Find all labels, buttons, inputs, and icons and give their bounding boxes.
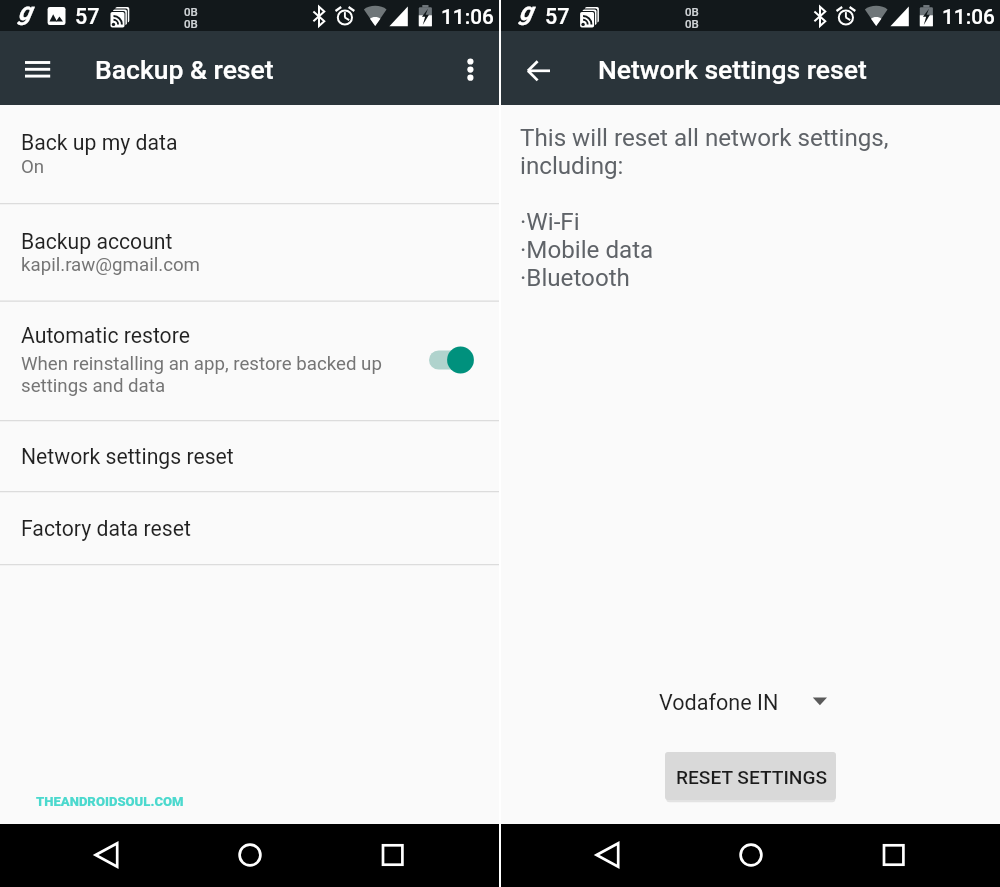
staticText: 11:06 [942,5,995,29]
button[interactable]: RESET SETTINGS [665,752,836,800]
staticText: g [519,0,533,26]
button[interactable]: Back [76,824,136,887]
staticText: Back up my data [21,130,178,155]
staticText: This will reset all network settings, in… [520,124,889,292]
staticText: THEANDROIDSOUL.COM [36,794,184,809]
staticText: Network settings reset [598,54,867,85]
button[interactable]: Recent apps [362,824,422,887]
staticText: g [18,0,32,26]
staticText: 0B [184,17,198,30]
button[interactable]: Recent apps [863,824,923,887]
staticText: Vodafone IN [659,690,779,715]
button[interactable]: Home [721,824,781,887]
staticText: kapil.raw@gmail.com [21,254,200,276]
button[interactable]: Back up my data [0,105,499,203]
button[interactable]: More options [446,45,494,93]
staticText: 11:06 [441,5,494,29]
staticText: 0B [685,5,699,18]
button[interactable]: Vodafone IN [656,684,836,724]
staticText: RESET SETTINGS [676,766,828,789]
staticText: 57 [545,4,570,29]
staticText: When reinstalling an app, restore backed… [21,353,382,397]
staticText: Backup account [21,229,173,254]
staticText: 0B [184,5,198,18]
button[interactable]: Home [220,824,280,887]
button[interactable]: Factory data reset [0,491,499,564]
staticText: On [21,156,45,178]
staticText: 0B [685,17,699,30]
button[interactable]: Back [577,824,637,887]
button[interactable]: Backup account [0,203,499,301]
button[interactable]: Navigate up [515,45,563,93]
staticText: Network settings reset [21,444,234,469]
staticText: Backup & reset [95,54,274,85]
staticText: 57 [75,4,100,29]
staticText: Automatic restore [21,323,190,348]
button[interactable]: Automatic restore [0,300,499,420]
button[interactable]: Open navigation drawer [13,45,61,93]
staticText: Factory data reset [21,516,191,541]
button[interactable]: Network settings reset [0,420,499,491]
